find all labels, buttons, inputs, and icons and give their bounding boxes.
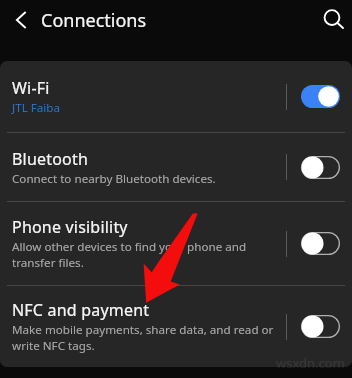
button[interactable]: Bluetooth xyxy=(0,133,352,201)
button[interactable]: Wi-Fi xyxy=(0,61,352,132)
staticText: transfer files. xyxy=(12,255,84,271)
staticText: Bluetooth xyxy=(12,148,89,170)
staticText: Phone visibility xyxy=(12,216,128,238)
button[interactable]: Phone visibility xyxy=(0,202,352,285)
button[interactable]: Search xyxy=(314,0,352,40)
button[interactable]: Toggle NFC and payment xyxy=(301,315,340,338)
button[interactable]: NFC and payment xyxy=(0,286,352,367)
staticText: Allow other devices to find your phone a… xyxy=(12,239,247,255)
staticText: wsxdn.com xyxy=(276,354,345,372)
staticText: JTL Faiba xyxy=(12,100,61,116)
button[interactable]: Navigate up xyxy=(0,0,41,40)
staticText: write NFC tags. xyxy=(12,338,95,354)
staticText: Make mobile payments, share data, and re… xyxy=(12,322,274,338)
button[interactable]: Toggle Wi-Fi xyxy=(301,85,340,108)
staticText: Wi-Fi xyxy=(12,77,50,99)
staticText: NFC and payment xyxy=(12,299,150,321)
button[interactable]: Toggle Bluetooth xyxy=(301,156,340,179)
button[interactable]: Toggle Phone visibility xyxy=(301,232,340,255)
staticText: Connect to nearby Bluetooth devices. xyxy=(12,171,216,187)
staticText: Connections xyxy=(41,8,147,33)
